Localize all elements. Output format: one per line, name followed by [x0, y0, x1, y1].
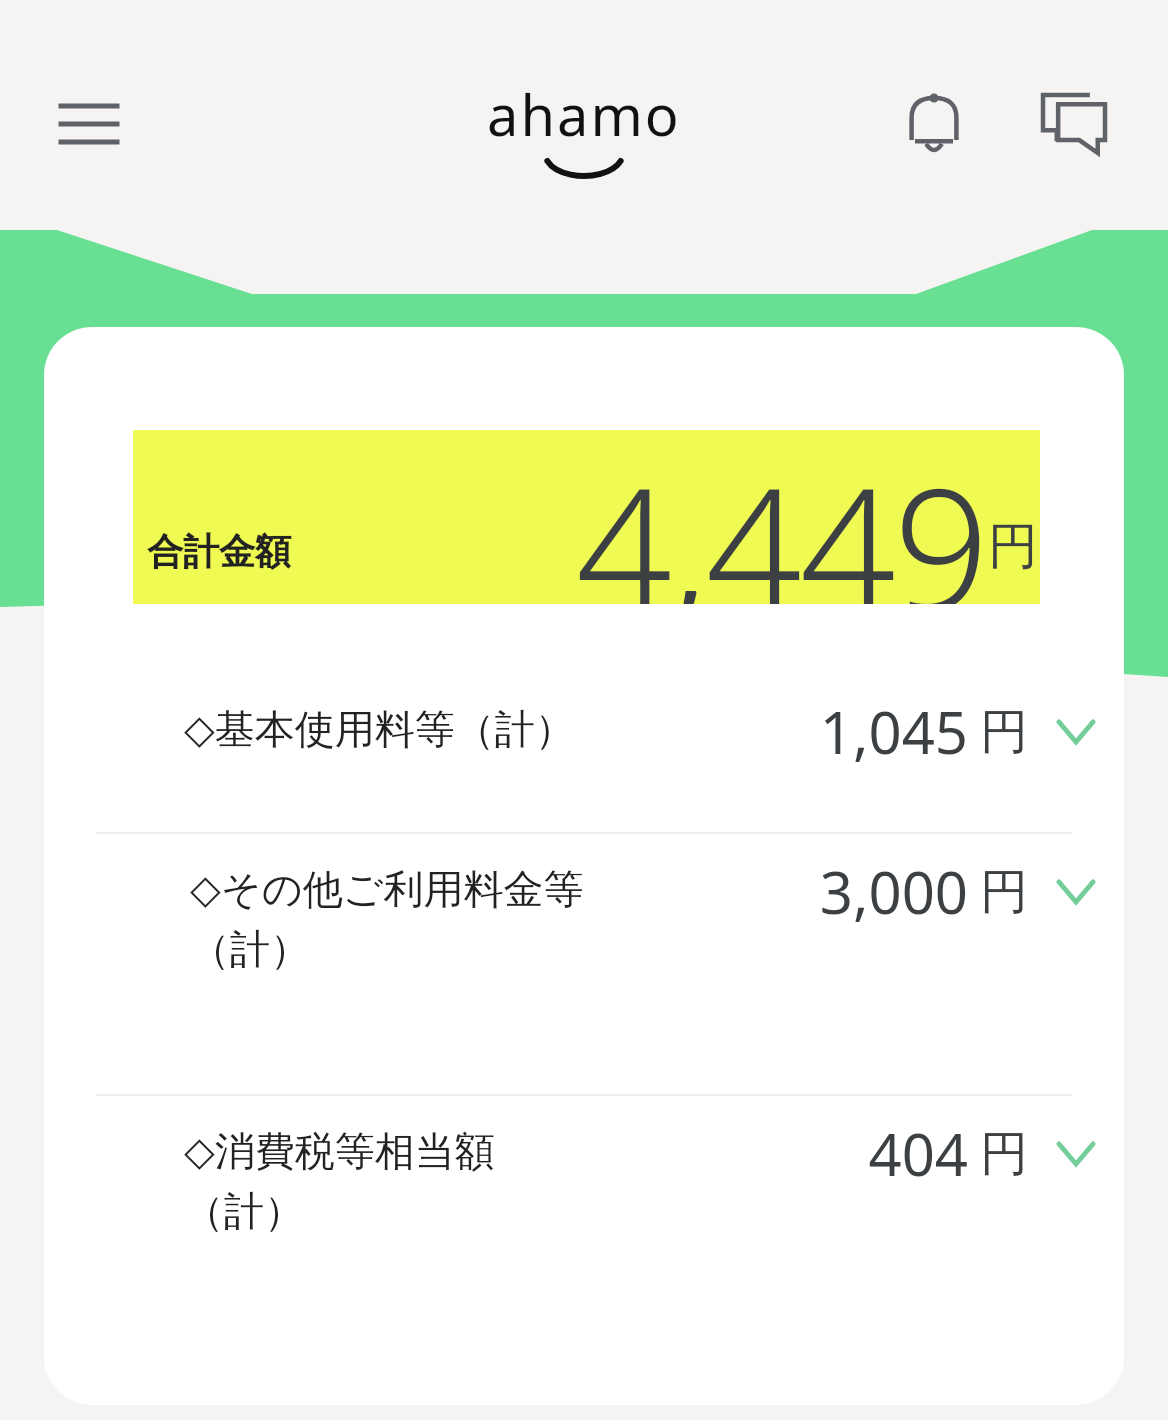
staticText: 円: [988, 515, 1038, 578]
staticText: 円: [980, 1124, 1028, 1184]
button[interactable]: ◇消費税等相当額（計）: [44, 1096, 1124, 1258]
button[interactable]: ◇その他ご利用料金等 （計）: [44, 834, 1124, 1094]
button[interactable]: ◇基本使用料等（計）: [44, 670, 1124, 832]
staticText: ◇その他ご利用料金等 （計）: [190, 864, 610, 975]
staticText: 3,000: [819, 852, 968, 931]
button[interactable]: Expand: [1050, 1128, 1102, 1180]
button[interactable]: Expand: [1050, 866, 1102, 918]
button[interactable]: Messages: [1022, 72, 1126, 176]
staticText: ahamo: [487, 76, 681, 152]
button[interactable]: ahamo: [487, 76, 681, 176]
staticText: 4,449: [576, 430, 988, 604]
button[interactable]: Expand: [1050, 706, 1102, 758]
staticText: 円: [980, 862, 1028, 922]
staticText: 合計金額: [147, 529, 291, 574]
button[interactable]: Menu: [40, 78, 138, 170]
staticText: ◇基本使用料等（計）: [184, 704, 604, 754]
staticText: ◇消費税等相当額（計）: [184, 1126, 604, 1237]
staticText: 404: [868, 1114, 968, 1193]
button[interactable]: Notifications: [884, 72, 984, 176]
staticText: 円: [980, 702, 1028, 762]
staticText: 1,045: [819, 692, 968, 771]
